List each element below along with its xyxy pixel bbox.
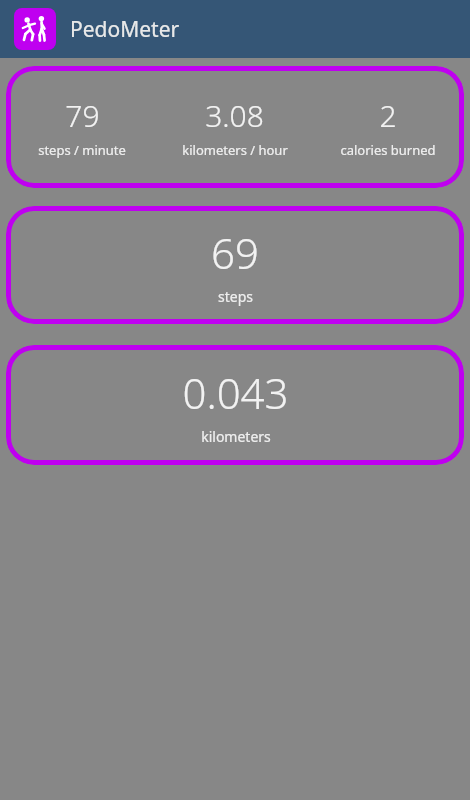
button[interactable]: 79 bbox=[6, 66, 464, 188]
button[interactable]: 0.043 bbox=[6, 345, 464, 465]
staticText: PedoMeter bbox=[70, 15, 180, 44]
button[interactable]: 69 bbox=[6, 206, 464, 324]
staticText: steps / minute bbox=[38, 141, 126, 159]
staticText: 69 bbox=[211, 224, 259, 281]
staticText: 3.08 bbox=[205, 95, 264, 136]
staticText: kilometers bbox=[201, 427, 271, 446]
staticText: kilometers / hour bbox=[182, 141, 288, 159]
staticText: 0.043 bbox=[182, 364, 289, 421]
button[interactable]: PedoMeter app icon bbox=[14, 8, 56, 50]
staticText: 79 bbox=[65, 95, 100, 136]
staticText: steps bbox=[218, 287, 253, 306]
staticText: calories burned bbox=[340, 141, 436, 159]
staticText: 2 bbox=[379, 95, 397, 136]
